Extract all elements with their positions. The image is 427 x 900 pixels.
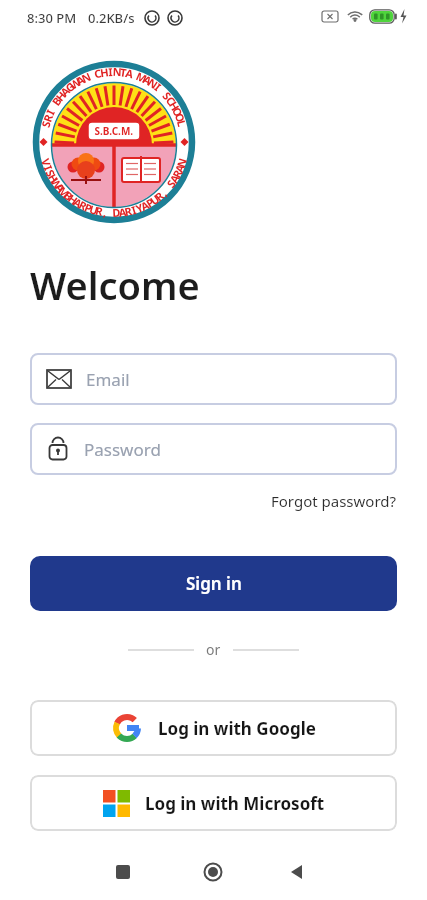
button[interactable]: [103, 858, 143, 886]
button[interactable]: Log in with Google: [30, 700, 397, 756]
staticText: Log in with Google: [158, 717, 316, 740]
button[interactable]: Password: [30, 423, 397, 475]
button[interactable]: [277, 858, 317, 886]
staticText: Password: [84, 438, 161, 461]
button[interactable]: Forgot password?: [237, 489, 397, 513]
button[interactable]: Sign in: [30, 556, 397, 611]
staticText: or: [206, 640, 221, 659]
staticText: 0.2KB/s: [88, 9, 135, 27]
staticText: Welcome: [30, 259, 200, 311]
staticText: Log in with Microsoft: [145, 792, 325, 815]
staticText: Sign in: [186, 572, 242, 595]
button[interactable]: Log in with Microsoft: [30, 775, 397, 831]
staticText: Email: [86, 368, 130, 391]
staticText: 8:30 PM: [27, 9, 77, 27]
button[interactable]: [193, 858, 233, 886]
button[interactable]: Email: [30, 353, 397, 405]
staticText: Forgot password?: [271, 491, 397, 511]
